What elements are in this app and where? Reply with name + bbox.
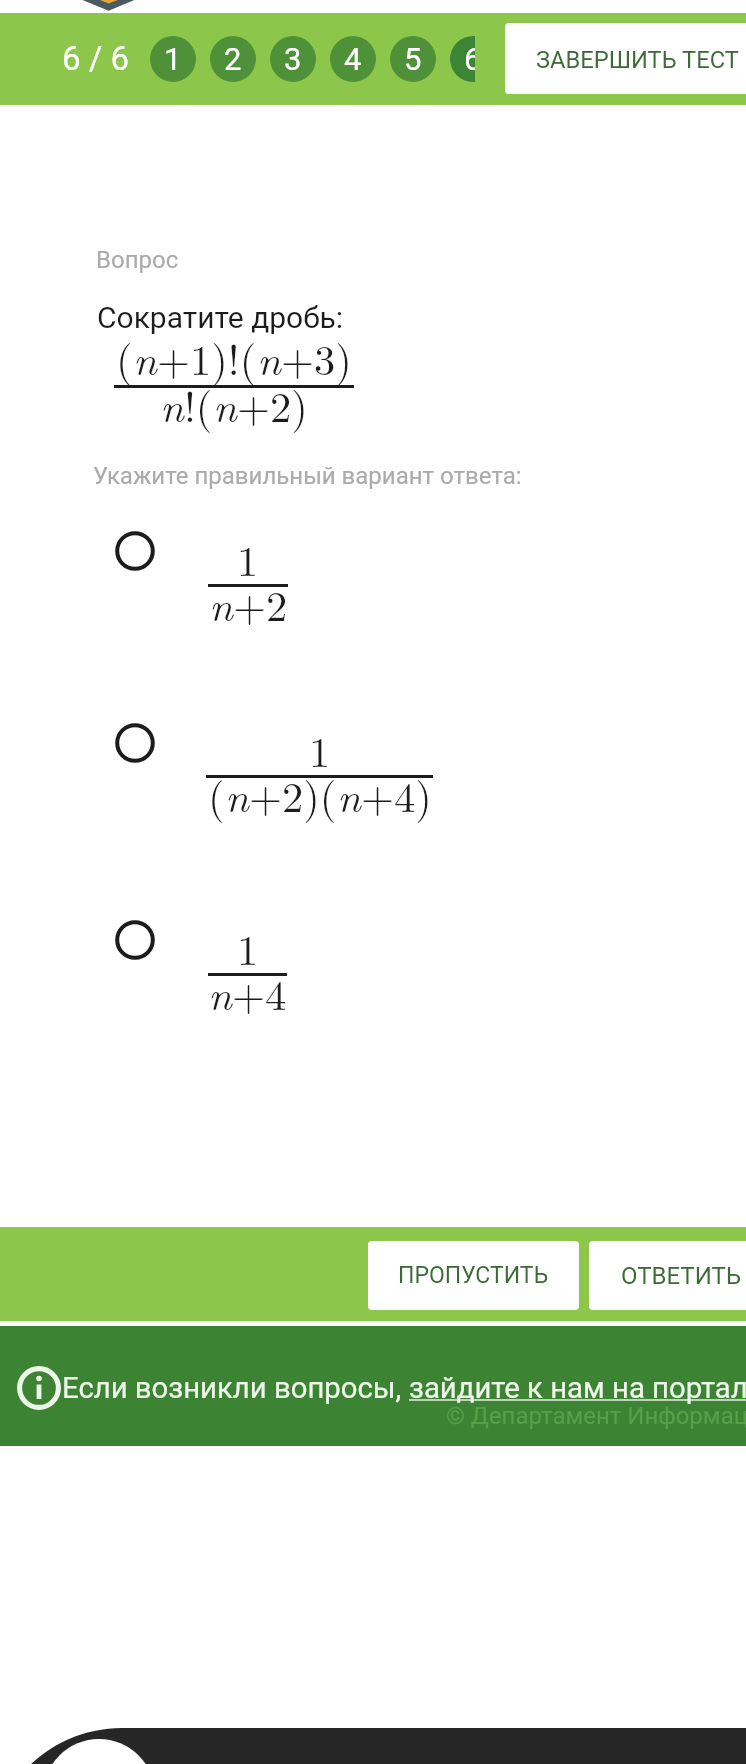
- staticText: 3: [284, 41, 302, 77]
- staticText: 2: [224, 41, 242, 77]
- staticText: 4: [344, 41, 362, 77]
- button[interactable]: 3: [270, 36, 316, 82]
- staticText: n: [160, 374, 184, 434]
- staticText: +2: [233, 573, 288, 633]
- staticText: Вопрос: [96, 246, 179, 274]
- staticText: +3): [281, 327, 352, 387]
- staticText: n: [337, 764, 361, 824]
- staticText: n: [213, 374, 237, 434]
- button[interactable]: 1: [150, 36, 196, 82]
- staticText: +4): [361, 764, 432, 824]
- staticText: ПРОПУСТИТЬ: [398, 1262, 549, 1289]
- staticText: n: [225, 764, 249, 824]
- button[interactable]: ЗАВЕРШИТЬ ТЕСТ: [505, 23, 746, 94]
- staticText: n: [208, 962, 232, 1022]
- staticText: 5: [404, 41, 422, 77]
- button[interactable]: ОТВЕТИТЬ: [589, 1241, 746, 1310]
- staticText: Сократите дробь:: [97, 300, 344, 335]
- staticText: (: [116, 327, 133, 387]
- staticText: 6 / 6: [62, 39, 130, 78]
- button[interactable]: 5: [390, 36, 436, 82]
- staticText: © Департамент Информац: [446, 1402, 746, 1430]
- button[interactable]: 4: [330, 36, 376, 82]
- staticText: n: [209, 573, 233, 633]
- staticText: (: [208, 764, 225, 824]
- staticText: 1: [309, 719, 331, 779]
- staticText: ЗАВЕРШИТЬ ТЕСТ: [536, 46, 739, 74]
- button[interactable]: 6: [450, 36, 475, 82]
- staticText: 6: [464, 41, 475, 77]
- button[interactable]: Информация: [17, 1366, 61, 1410]
- button[interactable]: ПРОПУСТИТЬ: [368, 1241, 579, 1310]
- staticText: 1: [237, 917, 259, 977]
- button[interactable]: [0, 518, 746, 688]
- staticText: 1: [164, 41, 182, 77]
- staticText: +2)(: [249, 764, 337, 824]
- staticText: 1: [237, 528, 259, 588]
- staticText: Укажите правильный вариант ответа:: [93, 462, 522, 490]
- staticText: !(: [184, 374, 213, 434]
- staticText: Если возникли вопросы,: [62, 1371, 409, 1405]
- staticText: n: [257, 327, 281, 387]
- button[interactable]: [0, 905, 746, 1075]
- staticText: +4: [232, 962, 287, 1022]
- staticText: +2): [237, 374, 308, 434]
- button[interactable]: [0, 706, 746, 876]
- button[interactable]: 2: [210, 36, 256, 82]
- staticText: +1)!(: [157, 327, 257, 387]
- staticText: ОТВЕТИТЬ: [621, 1262, 741, 1290]
- button[interactable]: зайдите к нам на портал: [409, 1371, 746, 1405]
- staticText: n: [133, 327, 157, 387]
